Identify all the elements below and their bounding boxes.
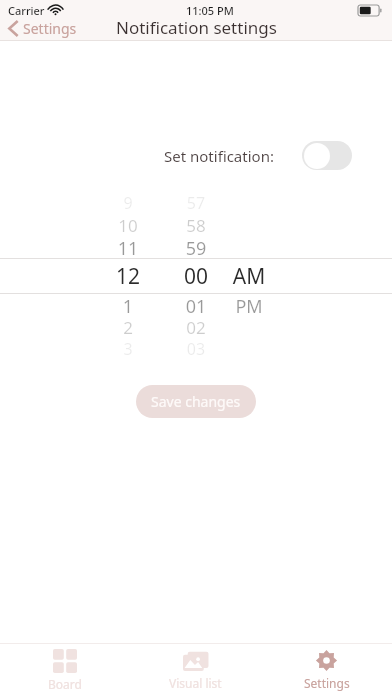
staticText: 01 xyxy=(161,294,231,316)
staticText: 11:05 PM xyxy=(186,3,234,18)
button[interactable]: Save changes xyxy=(136,385,256,418)
button[interactable]: Settings xyxy=(261,645,392,695)
button[interactable]: Time picker xyxy=(0,192,392,357)
staticText: 11 xyxy=(93,236,163,258)
staticText: Notification settings xyxy=(116,16,277,39)
staticText: Board xyxy=(48,676,82,692)
button[interactable]: Visual list xyxy=(130,646,261,695)
button[interactable]: Settings xyxy=(4,17,81,40)
staticText: Settings xyxy=(304,675,350,691)
staticText: PM xyxy=(214,294,284,316)
staticText: Settings xyxy=(23,19,77,38)
staticText: Carrier xyxy=(8,3,45,18)
staticText: Set notification: xyxy=(164,146,274,166)
staticText: 00 xyxy=(161,262,231,291)
staticText: 58 xyxy=(161,214,231,236)
staticText: 03 xyxy=(161,338,231,357)
staticText: AM xyxy=(214,262,284,291)
staticText: 02 xyxy=(161,316,231,338)
staticText: 2 xyxy=(93,316,163,338)
button[interactable]: Board xyxy=(0,645,130,696)
button[interactable]: Set notification toggle xyxy=(302,141,352,170)
staticText: 10 xyxy=(93,214,163,236)
staticText: Save changes xyxy=(151,392,241,411)
staticText: 1 xyxy=(93,294,163,316)
staticText: Visual list xyxy=(169,675,222,691)
staticText: 12 xyxy=(93,262,163,291)
staticText: 59 xyxy=(161,236,231,258)
staticText: 57 xyxy=(161,192,231,214)
